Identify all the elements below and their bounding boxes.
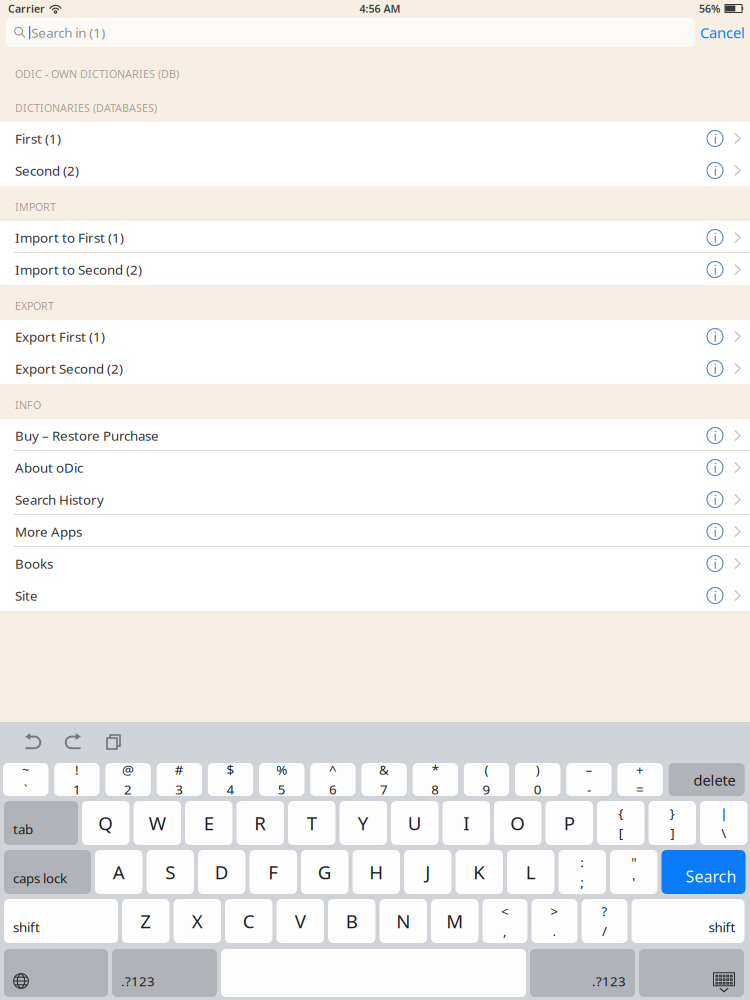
staticText: O [510, 811, 525, 835]
button[interactable]: U [391, 801, 438, 845]
button[interactable]: { [597, 801, 644, 845]
staticText: Z [140, 909, 151, 933]
button[interactable]: shift [4, 899, 118, 943]
button[interactable]: delete [669, 763, 745, 796]
button[interactable]: Dismiss keyboard [639, 949, 744, 997]
staticText: X [192, 909, 203, 933]
button[interactable]: > [531, 899, 577, 943]
button[interactable]: % [259, 763, 304, 796]
button[interactable]: Site [0, 579, 750, 611]
button[interactable]: E [185, 801, 232, 845]
button[interactable]: Paste [99, 729, 129, 755]
staticText: Import to First (1) [15, 229, 124, 246]
staticText: & [379, 761, 389, 778]
button[interactable]: A [95, 850, 142, 894]
button[interactable]: R [236, 801, 284, 845]
button[interactable]: Search [661, 850, 745, 894]
button[interactable]: < [482, 899, 527, 943]
button[interactable]: | [700, 801, 747, 845]
button[interactable]: Books [0, 547, 750, 579]
button[interactable]: K [455, 850, 503, 894]
staticText: ` [24, 780, 28, 798]
button[interactable]: ~ [3, 763, 48, 796]
button[interactable]: L [507, 850, 554, 894]
button[interactable]: Import to First (1) [0, 221, 750, 253]
button[interactable]: P [545, 801, 593, 845]
button[interactable]: $ [208, 763, 253, 796]
staticText: 3 [175, 780, 183, 798]
button[interactable]: # [157, 763, 202, 796]
button[interactable]: Export Second (2) [0, 352, 750, 384]
button[interactable]: .?123 [112, 949, 217, 997]
button[interactable]: Second (2) [0, 154, 750, 186]
button[interactable]: Undo [17, 729, 49, 755]
button[interactable]: .?123 [530, 949, 635, 997]
staticText: M [446, 909, 463, 933]
button[interactable]: X [173, 899, 221, 943]
button[interactable]: N [379, 899, 427, 943]
button[interactable]: W [133, 801, 181, 845]
button[interactable]: Z [122, 899, 169, 943]
staticText: i [713, 360, 716, 377]
staticText: IMPORT [15, 200, 56, 214]
button[interactable]: ! [54, 763, 100, 796]
button[interactable]: ( [464, 763, 509, 796]
button[interactable]: O [494, 801, 541, 845]
button[interactable]: Redo [57, 729, 89, 755]
staticText: G [318, 860, 332, 884]
staticText: Search in (1) [31, 24, 105, 41]
staticText: ! [75, 761, 79, 778]
button[interactable]: B [328, 899, 375, 943]
button[interactable]: D [198, 850, 245, 894]
button[interactable]: H [352, 850, 400, 894]
button[interactable]: } [648, 801, 696, 845]
button[interactable]: Q [82, 801, 129, 845]
button[interactable]: & [361, 763, 407, 796]
staticText: 2 [124, 780, 132, 798]
staticText: 8 [431, 780, 439, 798]
button[interactable]: caps lock [4, 850, 91, 894]
button[interactable]: Search History [0, 483, 750, 515]
button[interactable]: @ [105, 763, 151, 796]
button[interactable]: " [610, 850, 657, 894]
button[interactable]: + [617, 763, 663, 796]
button[interactable]: Buy – Restore Purchase [0, 419, 750, 451]
staticText: DICTIONARIES (DATABASES) [15, 101, 157, 115]
button[interactable]: T [288, 801, 335, 845]
button[interactable]: V [276, 899, 324, 943]
button[interactable]: Change keyboard [4, 949, 108, 997]
staticText: ; [580, 873, 584, 891]
button[interactable]: ^ [310, 763, 356, 796]
button[interactable]: More Apps [0, 515, 750, 547]
button[interactable]: * [413, 763, 458, 796]
staticText: S [165, 860, 175, 884]
button[interactable]: G [301, 850, 348, 894]
button[interactable]: C [225, 899, 272, 943]
button[interactable]: Export First (1) [0, 320, 750, 352]
staticText: I [463, 811, 469, 835]
button[interactable]: M [431, 899, 478, 943]
button[interactable]: Import to Second (2) [0, 253, 750, 285]
staticText: Search [685, 866, 736, 887]
button[interactable]: Y [339, 801, 387, 845]
staticText: shift [708, 918, 735, 936]
button[interactable]: I [442, 801, 490, 845]
button[interactable]: First (1) [0, 122, 750, 154]
button[interactable]: Cancel [695, 18, 750, 47]
staticText: , [503, 922, 507, 940]
button[interactable]: – [566, 763, 612, 796]
staticText: 4:56 AM [359, 1, 400, 16]
staticText: V [295, 909, 306, 933]
button[interactable]: S [146, 850, 194, 894]
button[interactable]: F [249, 850, 297, 894]
staticText: E [204, 811, 214, 835]
staticText: : [580, 853, 584, 871]
button[interactable]: : [558, 850, 606, 894]
button[interactable]: ? [581, 899, 627, 943]
button[interactable]: ) [515, 763, 560, 796]
button[interactable]: J [404, 850, 451, 894]
button[interactable]: shift [631, 899, 744, 943]
button[interactable]: tab [4, 801, 78, 845]
button[interactable]: About oDic [0, 451, 750, 483]
